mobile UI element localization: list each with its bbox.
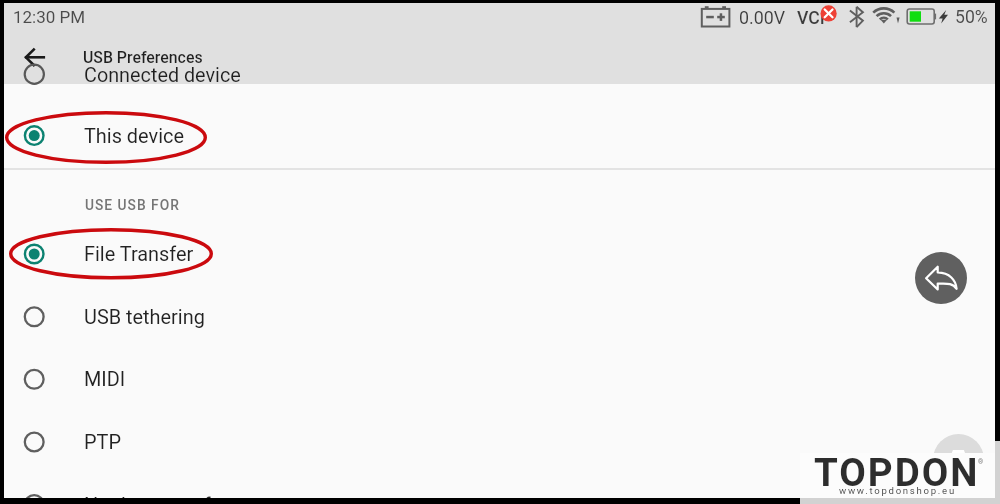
button[interactable]: Navigate up (14, 42, 56, 74)
staticText: This device (84, 125, 184, 148)
staticText: No data transfer (84, 494, 228, 498)
button[interactable]: File Transfer (4, 223, 995, 285)
staticText: ® (978, 458, 984, 466)
button[interactable]: MIDI (4, 348, 995, 410)
staticText: 0.00V (739, 7, 786, 28)
button[interactable]: This device (4, 105, 995, 167)
staticText: VCI (797, 8, 825, 29)
staticText: Connected device (84, 64, 241, 87)
button[interactable]: No data transfer (4, 473, 995, 498)
staticText: www.topdonshop.eu (839, 485, 956, 496)
staticText: 12:30 PM (13, 7, 86, 27)
staticText: PTP (84, 431, 121, 454)
staticText: 50% (955, 7, 988, 28)
staticText: File Transfer (84, 243, 194, 266)
button[interactable]: USB tethering (4, 286, 995, 348)
staticText: USB Preferences (83, 48, 203, 67)
button[interactable]: Screenshot (933, 434, 984, 485)
staticText: USB tethering (84, 306, 205, 329)
button[interactable]: Back (915, 252, 967, 304)
staticText: MIDI (84, 368, 126, 391)
staticText: TOPDON (814, 450, 980, 495)
staticText: USE USB FOR (85, 197, 180, 213)
button[interactable]: PTP (4, 411, 995, 473)
